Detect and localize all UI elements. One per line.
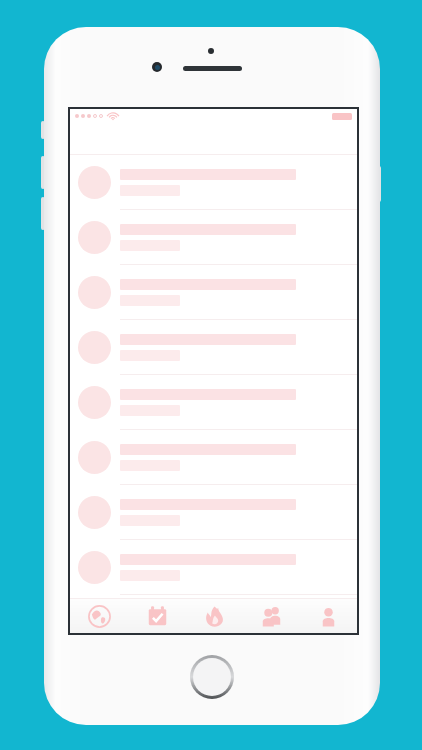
button[interactable] xyxy=(70,210,357,265)
button[interactable] xyxy=(70,155,357,210)
button[interactable]: Events xyxy=(128,599,186,633)
button[interactable] xyxy=(70,265,357,320)
button[interactable] xyxy=(70,540,357,595)
button[interactable]: Profile xyxy=(300,599,357,633)
button[interactable] xyxy=(70,320,357,375)
button[interactable]: Discover xyxy=(70,599,128,633)
button[interactable]: Home xyxy=(190,655,234,699)
button[interactable]: Trending xyxy=(186,599,243,633)
button[interactable]: Friends xyxy=(243,599,300,633)
button[interactable] xyxy=(70,375,357,430)
button[interactable] xyxy=(70,430,357,485)
button[interactable] xyxy=(70,485,357,540)
